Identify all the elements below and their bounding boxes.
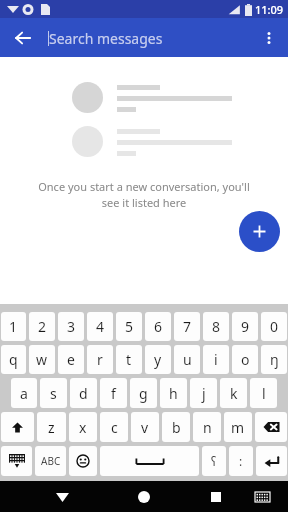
staticText: 7 — [183, 317, 192, 336]
button[interactable]: ʕ — [202, 446, 226, 476]
staticText: ABC — [41, 454, 61, 468]
staticText: f — [111, 384, 116, 403]
button[interactable]: c — [100, 412, 128, 442]
staticText: w — [36, 350, 48, 369]
staticText: g — [139, 384, 148, 403]
staticText: n — [203, 418, 212, 437]
staticText: z — [48, 418, 55, 437]
button[interactable]: 0 — [261, 312, 287, 341]
button[interactable]: Shift — [1, 412, 34, 442]
staticText: s — [50, 384, 57, 403]
button[interactable]: Search messages — [48, 23, 250, 53]
button[interactable]: 9 — [232, 312, 258, 341]
button[interactable]: h — [160, 378, 187, 408]
button[interactable]: n — [193, 412, 221, 442]
button[interactable]: 2 — [29, 312, 55, 341]
button[interactable]: Home — [130, 483, 158, 511]
button[interactable]: Recents — [202, 483, 230, 511]
staticText: 2 — [38, 317, 47, 336]
staticText: 11:09 — [255, 2, 284, 17]
button[interactable]: 7 — [174, 312, 200, 341]
button[interactable]: Enter — [256, 446, 287, 476]
button[interactable]: a — [11, 378, 37, 408]
staticText: c — [111, 418, 118, 437]
staticText: k — [230, 384, 238, 403]
staticText: x — [79, 418, 87, 437]
button[interactable]: b — [162, 412, 190, 442]
staticText: ʕ — [211, 453, 217, 469]
button[interactable]: Backspace — [255, 412, 287, 442]
staticText: o — [241, 350, 250, 369]
staticText: a — [20, 384, 28, 403]
button[interactable]: q — [1, 345, 26, 374]
staticText: : — [239, 453, 243, 469]
button[interactable]: r — [87, 345, 113, 374]
staticText: Search messages — [49, 29, 163, 48]
button[interactable]: j — [190, 378, 217, 408]
staticText: t — [126, 350, 132, 369]
staticText: 1 — [9, 317, 18, 336]
button[interactable]: 4 — [87, 312, 113, 341]
staticText: 4 — [96, 317, 105, 336]
button[interactable]: l — [250, 378, 277, 408]
staticText: q — [9, 350, 18, 369]
staticText: j — [202, 384, 206, 403]
staticText: m — [231, 418, 245, 437]
button[interactable]: i — [203, 345, 229, 374]
button[interactable]: e — [58, 345, 84, 374]
button[interactable]: z — [37, 412, 66, 442]
button[interactable]: ABC — [35, 446, 66, 476]
staticText: 5 — [125, 317, 134, 336]
staticText: 9 — [241, 317, 250, 336]
staticText: 3 — [67, 317, 76, 336]
staticText: 8 — [212, 317, 221, 336]
button[interactable]: : — [229, 446, 253, 476]
button[interactable]: New conversation — [239, 211, 280, 252]
button[interactable]: 8 — [203, 312, 229, 341]
staticText: d — [79, 384, 88, 403]
staticText: i — [214, 350, 218, 369]
button[interactable]: 5 — [116, 312, 142, 341]
button[interactable]: t — [116, 345, 142, 374]
staticText: Once you start a new conversation, you'l… — [20, 179, 268, 210]
button[interactable]: 6 — [145, 312, 171, 341]
staticText: v — [141, 418, 149, 437]
button[interactable]: m — [224, 412, 252, 442]
button[interactable]: f — [100, 378, 127, 408]
button[interactable]: v — [131, 412, 159, 442]
button[interactable]: u — [174, 345, 200, 374]
button[interactable]: 1 — [1, 312, 26, 341]
button[interactable]: g — [130, 378, 157, 408]
staticText: l — [262, 384, 266, 403]
button[interactable]: k — [220, 378, 247, 408]
staticText: 6 — [154, 317, 163, 336]
button[interactable]: ŋ — [261, 345, 287, 374]
button[interactable]: w — [29, 345, 55, 374]
staticText: h — [169, 384, 178, 403]
button[interactable]: Emoji — [69, 446, 97, 476]
button[interactable]: Hide keyboard — [48, 483, 76, 511]
staticText: r — [97, 350, 103, 369]
staticText: ŋ — [270, 350, 279, 369]
staticText: 0 — [270, 317, 279, 336]
button[interactable]: Space — [100, 446, 199, 476]
staticText: b — [172, 418, 181, 437]
button[interactable]: x — [69, 412, 97, 442]
button[interactable]: d — [70, 378, 97, 408]
button[interactable]: Back — [6, 21, 40, 55]
button[interactable]: Switch keyboard — [248, 483, 276, 511]
staticText: e — [67, 350, 75, 369]
staticText: y — [154, 350, 162, 369]
button[interactable]: s — [40, 378, 67, 408]
button[interactable]: 3 — [58, 312, 84, 341]
button[interactable]: y — [145, 345, 171, 374]
button[interactable]: o — [232, 345, 258, 374]
button[interactable]: Change keyboard — [1, 446, 32, 476]
button[interactable]: More options — [254, 23, 284, 53]
staticText: u — [183, 350, 192, 369]
